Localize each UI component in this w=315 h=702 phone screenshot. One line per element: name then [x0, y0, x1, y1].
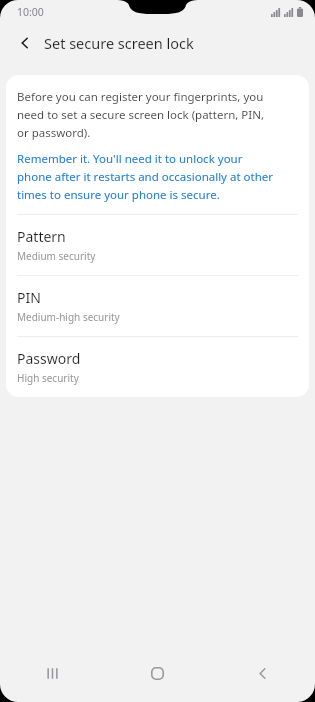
staticText: Medium-high security [17, 310, 120, 324]
button[interactable]: PIN [6, 276, 309, 336]
button[interactable]: Back [210, 656, 315, 690]
staticText: need to set a secure screen lock (patter… [17, 107, 264, 123]
staticText: 10:00 [17, 5, 44, 19]
staticText: Remember it. You'll need it to unlock yo… [17, 151, 243, 167]
staticText: Set secure screen lock [44, 33, 194, 53]
button[interactable]: Password [6, 337, 309, 397]
staticText: times to ensure your phone is secure. [17, 187, 220, 203]
staticText: Medium security [17, 249, 96, 263]
staticText: or password). [17, 125, 91, 141]
button[interactable]: Pattern [6, 215, 309, 275]
button[interactable]: Home [105, 656, 210, 690]
staticText: PIN [17, 288, 41, 307]
staticText: phone after it restarts and occasionally… [17, 169, 274, 185]
staticText: Before you can register your fingerprint… [17, 89, 264, 105]
staticText: Password [17, 349, 81, 368]
staticText: High security [17, 371, 79, 385]
button[interactable]: Recent apps [0, 656, 105, 690]
button[interactable]: Back [11, 29, 39, 57]
staticText: Pattern [17, 227, 66, 246]
